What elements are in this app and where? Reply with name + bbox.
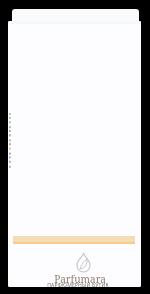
button[interactable]: Parfumara bbox=[54, 272, 106, 286]
button[interactable]: Parfumara home bbox=[77, 253, 90, 272]
button[interactable] bbox=[12, 9, 139, 21]
button[interactable]: ПАРФЮМЕРНЫЙ БУТИК bbox=[47, 282, 109, 287]
